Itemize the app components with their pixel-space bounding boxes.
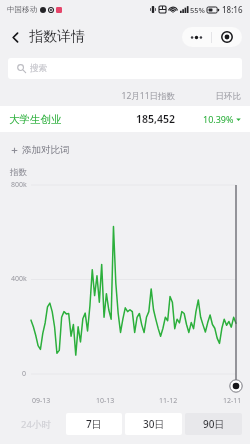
- button[interactable]: 大学生创业: [0, 106, 250, 132]
- staticText: 日环比: [175, 91, 241, 102]
- button[interactable]: 添加对比词: [9, 141, 72, 159]
- staticText: 中国移动: [7, 5, 37, 14]
- staticText: 400k: [11, 274, 27, 284]
- staticText: 指数详情: [29, 28, 85, 46]
- staticText: 10-13: [96, 396, 115, 406]
- staticText: 09-13: [32, 396, 51, 406]
- button[interactable]: 搜索: [8, 58, 242, 79]
- staticText: 185,452: [83, 112, 175, 126]
- staticText: 24小时: [21, 418, 51, 431]
- staticText: 0: [22, 369, 27, 379]
- staticText: 30日: [143, 417, 165, 431]
- button[interactable]: 90日: [185, 413, 242, 435]
- other: Back: [9, 31, 22, 44]
- staticText: 55%: [190, 5, 205, 15]
- staticText: 18:16: [222, 4, 243, 15]
- button[interactable]: 24小时: [8, 413, 64, 435]
- staticText: 添加对比词: [22, 144, 70, 156]
- staticText: 搜索: [30, 63, 47, 74]
- staticText: 11-12: [159, 396, 178, 406]
- button[interactable]: Close: [212, 27, 242, 47]
- staticText: 12月11日指数: [83, 90, 175, 102]
- staticText: 指数: [10, 167, 27, 178]
- staticText: 12-11: [223, 396, 242, 406]
- staticText: 7日: [86, 417, 102, 431]
- button[interactable]: 7日: [66, 413, 122, 435]
- staticText: 800k: [11, 180, 27, 190]
- staticText: 10.39%: [203, 113, 234, 125]
- button[interactable]: More options: [182, 27, 211, 47]
- button[interactable]: Back: [5, 24, 89, 50]
- staticText: 大学生创业: [9, 113, 83, 126]
- button[interactable]: 30日: [125, 413, 182, 435]
- staticText: 90日: [203, 417, 225, 431]
